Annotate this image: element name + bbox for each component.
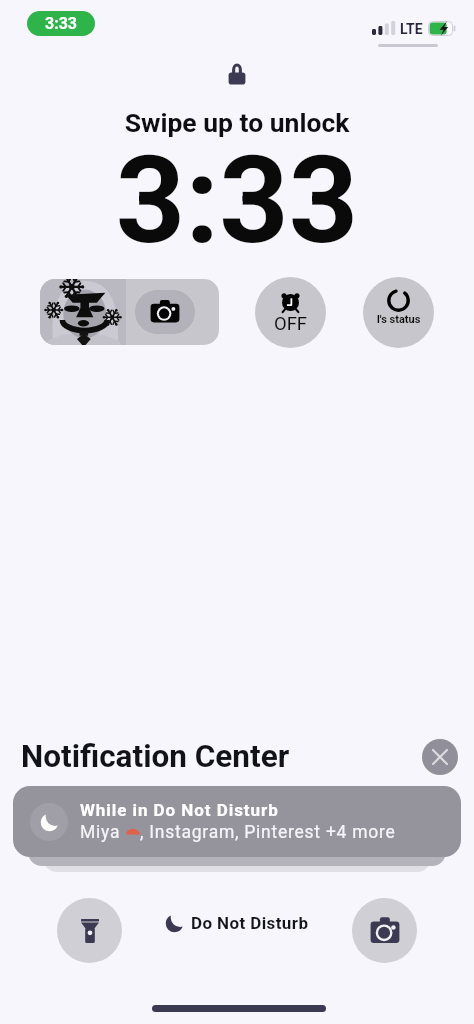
button[interactable]: Do Not Disturb [165,913,309,933]
button[interactable]: While in Do Not Disturb [13,786,461,857]
staticText: Miya [80,822,126,843]
staticText: 3:33 [0,130,474,272]
staticText: LTE [400,21,423,37]
staticText: , Instagram, Pinterest +4 more [140,822,396,843]
staticText: Do Not Disturb [191,913,309,933]
button[interactable]: 3:33 [27,11,95,36]
button[interactable]: Flashlight [57,898,122,963]
button[interactable]: Close [422,739,458,775]
button[interactable] [40,279,219,345]
staticText: I's status [363,313,434,326]
staticText: 3:33 [45,14,78,33]
staticText: Notification Center [21,738,290,775]
button[interactable]: OFF [255,277,326,348]
button[interactable]: I's status [363,277,434,348]
staticText: While in Do Not Disturb [80,800,279,820]
button[interactable]: Camera [352,898,417,963]
staticText: Swipe up to unlock [0,107,474,138]
staticText: OFF [255,313,326,335]
